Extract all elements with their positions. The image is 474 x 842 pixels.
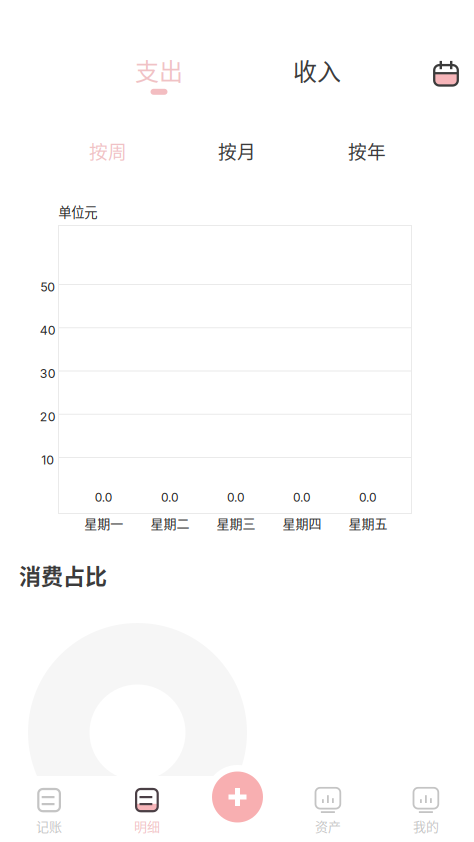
staticText: 20 — [40, 409, 56, 424]
button[interactable]: 收入 — [257, 46, 377, 102]
staticText: 记账 — [36, 816, 62, 835]
staticText: 0.0 — [293, 490, 311, 505]
staticText: 0.0 — [95, 490, 113, 505]
staticText: 星期二 — [150, 513, 189, 532]
staticText: 40 — [40, 323, 56, 338]
staticText: 消费占比 — [19, 559, 107, 591]
button[interactable]: 明细 — [99, 776, 193, 842]
staticText: 星期三 — [216, 513, 255, 532]
staticText: 星期一 — [84, 513, 123, 532]
staticText: 0.0 — [161, 490, 179, 505]
staticText: 按周 — [89, 137, 127, 164]
staticText: 30 — [40, 366, 56, 381]
staticText: 单位元 — [58, 202, 97, 221]
button[interactable]: Calendar — [424, 50, 468, 94]
staticText: 按月 — [218, 137, 256, 164]
staticText: 收入 — [293, 53, 341, 87]
staticText: 0.0 — [359, 490, 377, 505]
staticText: 我的 — [413, 816, 439, 835]
staticText: 星期五 — [348, 513, 387, 532]
staticText: 10 — [41, 452, 54, 467]
button[interactable]: 我的 — [378, 776, 472, 842]
staticText: 星期四 — [282, 513, 321, 532]
button[interactable]: 按月 — [177, 131, 297, 169]
staticText: 50 — [40, 279, 55, 294]
staticText: 按年 — [348, 137, 386, 164]
button[interactable]: 记账 — [2, 776, 96, 842]
button[interactable]: 按年 — [307, 131, 427, 169]
staticText: 支出 — [135, 53, 183, 87]
staticText: 明细 — [134, 816, 160, 835]
staticText: 0.0 — [227, 490, 245, 505]
button[interactable]: 按周 — [48, 131, 168, 169]
button[interactable]: Add — [207, 766, 268, 827]
staticText: 资产 — [315, 816, 341, 835]
button[interactable]: 资产 — [280, 776, 374, 842]
button[interactable]: 支出 — [99, 46, 219, 102]
